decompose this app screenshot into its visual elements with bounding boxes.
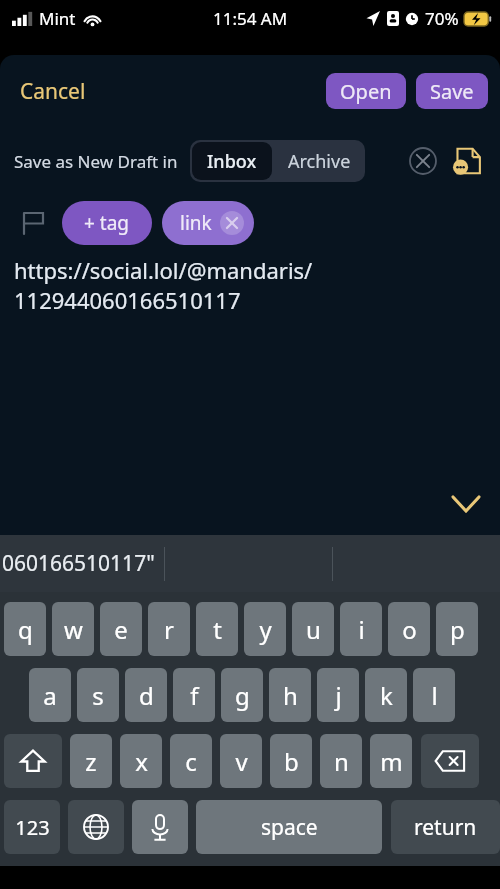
staticText: Cancel (20, 77, 86, 106)
staticText: c (185, 745, 197, 778)
staticText: f (190, 679, 199, 712)
button[interactable]: Switch keyboard (68, 800, 124, 854)
staticText: a (43, 679, 57, 712)
button[interactable]: Dictation (132, 800, 188, 854)
button[interactable]: q (4, 602, 46, 656)
button[interactable]: c (170, 734, 212, 788)
button[interactable]: p (436, 602, 478, 656)
staticText: g (235, 679, 250, 712)
staticText: o (402, 613, 417, 646)
button[interactable]: o (388, 602, 430, 656)
button[interactable]: space (196, 800, 382, 854)
staticText: return (414, 813, 477, 842)
staticText: m (380, 745, 403, 778)
staticText: j (335, 679, 342, 712)
staticText: s (92, 679, 104, 712)
button[interactable]: link (162, 201, 254, 245)
staticText: space (261, 813, 318, 842)
staticText: Save as New Draft in (14, 150, 178, 173)
button[interactable]: + tag (62, 201, 152, 245)
button[interactable]: t (196, 602, 238, 656)
button[interactable]: y (244, 602, 286, 656)
button[interactable]: w (52, 602, 94, 656)
button[interactable]: Flag (16, 206, 50, 240)
button[interactable]: 123 (4, 800, 60, 854)
button[interactable]: Collapse (448, 487, 484, 521)
staticText: e (114, 613, 128, 646)
staticText: + tag (84, 210, 130, 236)
staticText: x (135, 745, 148, 778)
staticText: b (284, 745, 299, 778)
button[interactable]: Document notes (448, 142, 486, 180)
staticText: k (380, 679, 393, 712)
button[interactable]: l (413, 668, 455, 722)
button[interactable]: s (77, 668, 119, 722)
button[interactable]: Clear (406, 144, 440, 178)
staticText: https://social.lol/@mandaris/ (14, 255, 313, 285)
button[interactable]: b (270, 734, 312, 788)
staticText: Open (340, 78, 392, 105)
staticText: d (139, 679, 154, 712)
button[interactable]: m (370, 734, 412, 788)
staticText: t (213, 613, 222, 646)
staticText: i (358, 613, 365, 646)
button[interactable]: Inbox (192, 142, 272, 180)
button[interactable]: z (70, 734, 112, 788)
button[interactable]: Cancel (10, 71, 96, 112)
staticText: 70% (425, 7, 459, 30)
staticText: Save (430, 78, 474, 105)
staticText: link (180, 210, 212, 236)
button[interactable]: k (365, 668, 407, 722)
button[interactable]: Backspace (421, 734, 479, 788)
staticText: Mint (39, 7, 76, 30)
button[interactable]: u (292, 602, 334, 656)
staticText: w (64, 613, 83, 646)
staticText: y (259, 613, 272, 646)
button[interactable]: i (340, 602, 382, 656)
button[interactable]: d (125, 668, 167, 722)
button[interactable]: f (173, 668, 215, 722)
button[interactable]: e (100, 602, 142, 656)
button[interactable]: j (317, 668, 359, 722)
staticText: n (334, 745, 349, 778)
staticText: q (18, 613, 33, 646)
staticText: l (431, 679, 438, 712)
button[interactable]: a (29, 668, 71, 722)
staticText: r (164, 613, 174, 646)
button[interactable]: Save (416, 73, 488, 109)
staticText: Inbox (207, 149, 257, 174)
button[interactable]: return (391, 800, 500, 854)
button[interactable]: g (221, 668, 263, 722)
staticText: z (85, 745, 97, 778)
button[interactable]: n (320, 734, 362, 788)
button[interactable]: Open (326, 73, 406, 109)
button[interactable]: Shift (4, 734, 62, 788)
button[interactable]: v (220, 734, 262, 788)
staticText: h (283, 679, 298, 712)
staticText: 112944060166510117 (14, 285, 241, 315)
staticText: 123 (15, 814, 50, 841)
button[interactable]: r (148, 602, 190, 656)
button[interactable]: h (269, 668, 311, 722)
button[interactable]: x (120, 734, 162, 788)
staticText: Archive (288, 149, 351, 174)
staticText: p (450, 613, 465, 646)
staticText: u (306, 613, 321, 646)
staticText: 060166510117" (2, 549, 155, 578)
staticText: v (235, 745, 248, 778)
button[interactable]: Archive (274, 140, 365, 182)
staticText: 11:54 AM (213, 7, 288, 30)
